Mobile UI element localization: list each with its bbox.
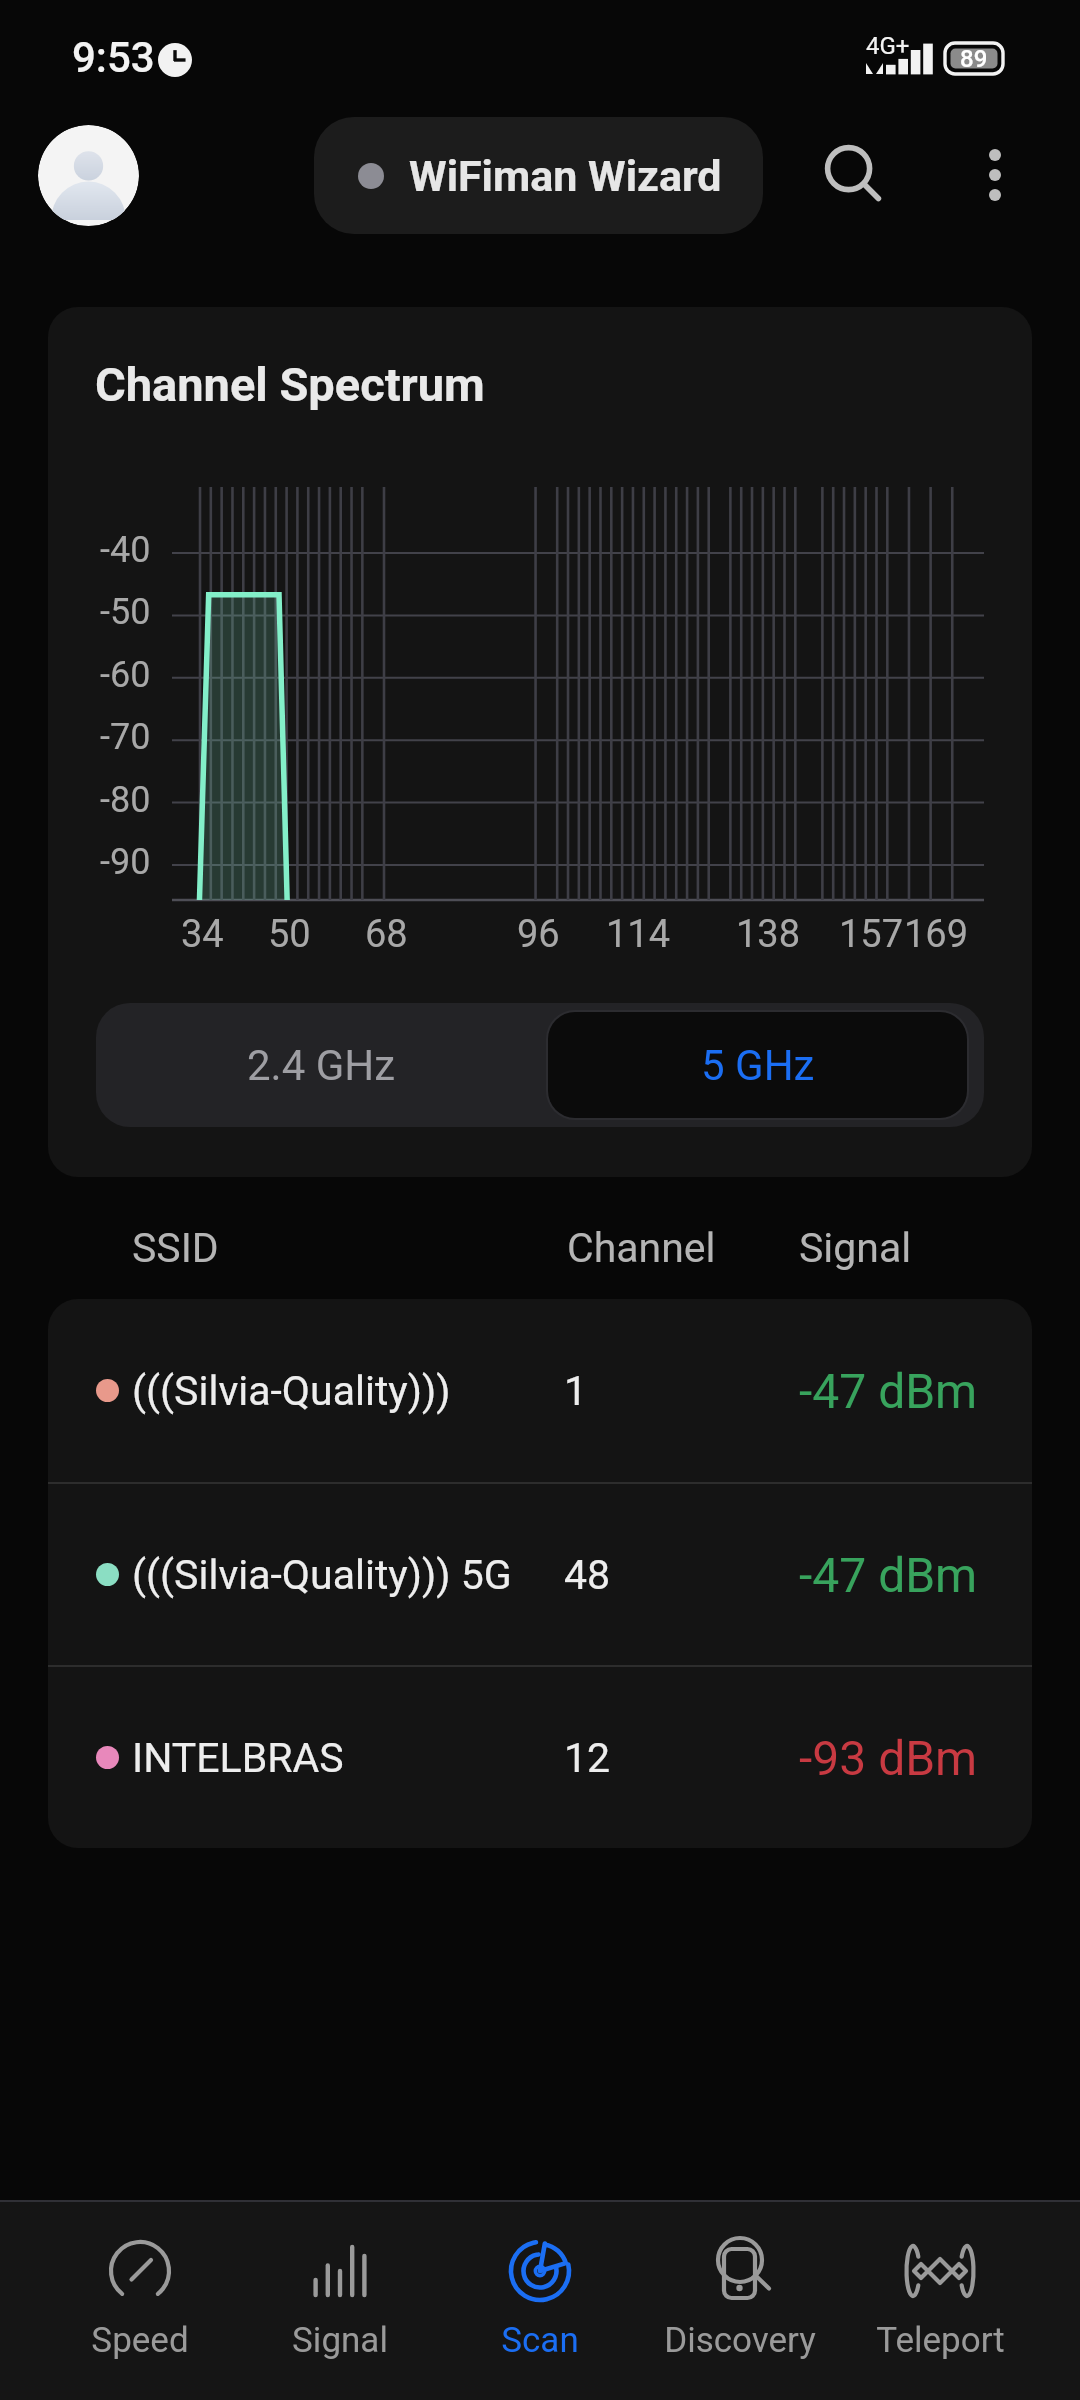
staticText: 4G+ bbox=[866, 32, 910, 60]
staticText: 5 GHz bbox=[701, 1041, 815, 1090]
button[interactable]: Discovery bbox=[640, 2202, 840, 2400]
staticText: Channel bbox=[567, 1224, 716, 1272]
staticText: 114 bbox=[606, 912, 671, 957]
button[interactable]: 2.4 GHz bbox=[96, 1003, 546, 1127]
button[interactable]: Signal bbox=[240, 2202, 440, 2400]
staticText: 157 bbox=[839, 912, 904, 957]
staticText: -80 bbox=[100, 779, 151, 821]
button[interactable]: More options bbox=[945, 125, 1045, 225]
staticText: Signal bbox=[799, 1224, 912, 1272]
button[interactable]: Speed bbox=[40, 2202, 240, 2400]
staticText: INTELBRAS bbox=[132, 1734, 344, 1782]
staticText: -40 bbox=[100, 529, 151, 571]
staticText: 169 bbox=[904, 912, 969, 957]
staticText: Speed bbox=[91, 2320, 189, 2361]
staticText: 34 bbox=[181, 912, 224, 957]
staticText: 68 bbox=[365, 912, 408, 957]
staticText: -47 dBm bbox=[799, 1547, 978, 1603]
staticText: -93 dBm bbox=[799, 1730, 978, 1786]
staticText: -47 dBm bbox=[799, 1363, 978, 1419]
staticText: -60 bbox=[100, 654, 151, 696]
staticText: 1 bbox=[564, 1367, 588, 1415]
button[interactable]: Scan bbox=[440, 2202, 640, 2400]
staticText: 2.4 GHz bbox=[247, 1041, 396, 1090]
staticText: Teleport bbox=[876, 2320, 1005, 2361]
staticText: (((Silvia-Quality))) 5G bbox=[132, 1551, 512, 1599]
staticText: 50 bbox=[268, 912, 311, 957]
staticText: -50 bbox=[100, 591, 151, 633]
button[interactable]: Account bbox=[38, 125, 139, 226]
staticText: 48 bbox=[564, 1551, 611, 1599]
button[interactable]: (((Silvia-Quality))) bbox=[48, 1299, 1032, 1482]
staticText: Signal bbox=[292, 2320, 388, 2361]
button[interactable]: 5 GHz bbox=[548, 1012, 967, 1118]
staticText: SSID bbox=[132, 1224, 219, 1272]
staticText: 138 bbox=[736, 912, 801, 957]
staticText: Discovery bbox=[664, 2320, 816, 2361]
staticText: Channel Spectrum bbox=[95, 357, 485, 412]
staticText: 12 bbox=[564, 1734, 611, 1782]
staticText: 96 bbox=[517, 912, 560, 957]
button[interactable]: WiFiman Wizard bbox=[314, 117, 763, 234]
button[interactable]: (((Silvia-Quality))) 5G bbox=[48, 1484, 1032, 1665]
button[interactable]: INTELBRAS bbox=[48, 1667, 1032, 1848]
staticText: (((Silvia-Quality))) bbox=[132, 1367, 451, 1415]
button[interactable]: Search bbox=[800, 120, 910, 230]
staticText: -70 bbox=[100, 716, 151, 758]
staticText: WiFiman Wizard bbox=[409, 151, 722, 201]
staticText: 9:53 bbox=[72, 33, 155, 82]
staticText: -90 bbox=[100, 841, 151, 883]
button[interactable]: Teleport bbox=[840, 2202, 1040, 2400]
staticText: 89 bbox=[960, 45, 988, 73]
staticText: Scan bbox=[501, 2320, 579, 2361]
